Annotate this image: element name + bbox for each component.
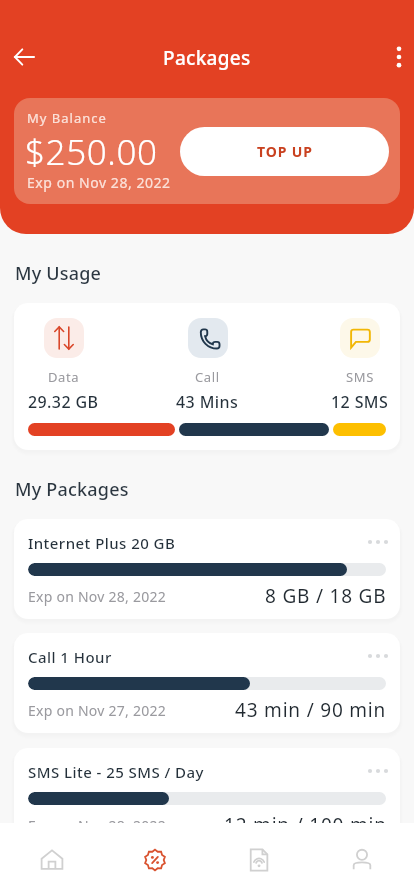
button[interactable]: TOP UP [180,127,389,176]
staticText: Data [48,368,80,386]
staticText: 12 SMS [331,391,389,413]
button[interactable]: Back [1,34,47,80]
button[interactable]: Profile [310,823,414,896]
button[interactable]: Data [28,318,99,413]
staticText: My Balance [27,109,107,127]
staticText: Call [195,368,220,386]
staticText: SMS [346,368,374,386]
staticText: My Usage [15,261,102,286]
button[interactable]: Packages [103,823,206,896]
staticText: Exp on Nov 28, 2022 [28,587,166,606]
staticText: Packages [163,45,251,71]
staticText: 29.32 GB [28,391,99,413]
button[interactable]: Options [367,645,389,667]
staticText: Internet Plus 20 GB [28,533,176,553]
button[interactable]: SMS [331,318,389,413]
staticText: Call 1 Hour [28,647,112,667]
button[interactable]: SMS Lite - 25 SMS / Day [14,748,400,848]
staticText: SMS Lite - 25 SMS / Day [28,762,204,782]
button[interactable]: Bills [206,823,310,896]
button[interactable]: Internet Plus 20 GB [14,519,400,619]
staticText: 12 min / 100 min [224,812,387,838]
staticText: Exp on Nov 28, 2022 [27,173,171,192]
staticText: Exp on Nov 27, 2022 [28,701,166,720]
staticText: Exp on Nov 28, 2022 [28,816,166,835]
button[interactable]: Options [367,760,389,782]
button[interactable]: More options [376,34,414,80]
button[interactable]: Call [176,318,239,413]
staticText: TOP UP [257,142,313,161]
button[interactable]: Call 1 Hour [14,633,400,733]
staticText: My Packages [15,477,129,502]
staticText: $250.00 [25,128,158,176]
staticText: 43 Mins [176,391,239,413]
staticText: 43 min / 90 min [235,697,387,723]
button[interactable]: Options [367,531,389,553]
button[interactable]: Home [0,823,103,896]
staticText: 8 GB / 18 GB [265,583,387,609]
